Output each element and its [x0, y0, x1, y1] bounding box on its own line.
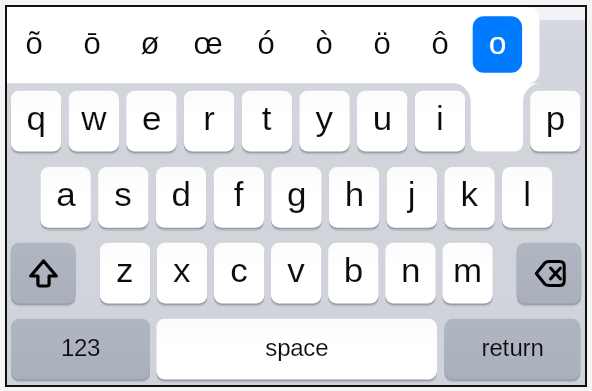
button[interactable]: x — [157, 243, 208, 304]
button[interactable]: 123 — [11, 319, 150, 380]
button[interactable]: e — [126, 91, 177, 152]
button[interactable]: c — [214, 243, 265, 304]
button[interactable]: ô — [411, 10, 467, 78]
button[interactable]: a — [40, 167, 91, 228]
button[interactable]: o — [472, 91, 523, 152]
button[interactable]: p — [530, 91, 581, 152]
button[interactable]: v — [271, 243, 322, 304]
button[interactable]: i — [415, 91, 466, 152]
button[interactable]: õ — [5, 10, 61, 78]
button[interactable]: y — [299, 91, 350, 152]
button[interactable]: o — [470, 10, 526, 78]
button[interactable]: z — [100, 243, 151, 304]
button[interactable]: r — [184, 91, 235, 152]
button[interactable]: l — [502, 167, 553, 228]
button[interactable]: ò — [295, 10, 351, 78]
button[interactable]: g — [271, 167, 322, 228]
button[interactable]: b — [328, 243, 379, 304]
button[interactable]: n — [385, 243, 436, 304]
button[interactable]: ø — [121, 10, 177, 78]
button[interactable]: t — [242, 91, 293, 152]
button[interactable]: h — [329, 167, 380, 228]
button[interactable]: space — [156, 319, 437, 380]
button[interactable]: ö — [353, 10, 409, 78]
button[interactable]: d — [156, 167, 207, 228]
button[interactable]: return — [445, 319, 581, 380]
button[interactable]: ō — [63, 10, 119, 78]
button[interactable]: q — [11, 91, 62, 152]
button[interactable]: œ — [179, 10, 235, 78]
button[interactable]: k — [444, 167, 495, 228]
button[interactable]: u — [357, 91, 408, 152]
button[interactable]: s — [98, 167, 149, 228]
button[interactable]: Backspace — [517, 243, 582, 304]
button[interactable]: ó — [237, 10, 293, 78]
button[interactable]: m — [442, 243, 493, 304]
button[interactable]: Shift — [11, 243, 76, 304]
button[interactable]: j — [387, 167, 438, 228]
button[interactable]: w — [69, 91, 120, 152]
button[interactable]: f — [214, 167, 265, 228]
